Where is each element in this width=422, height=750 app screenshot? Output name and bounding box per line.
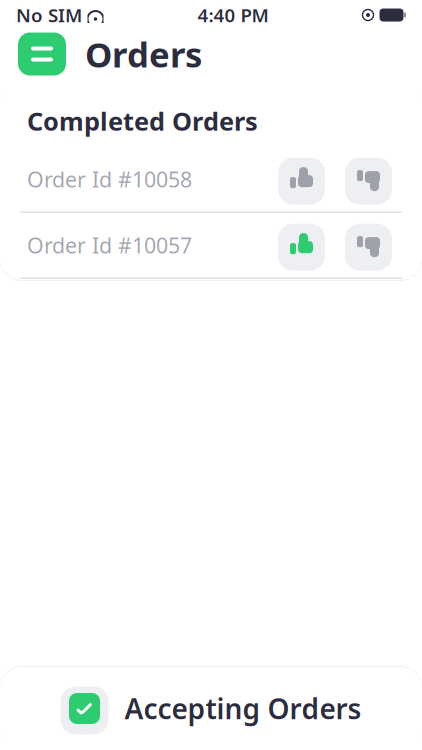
staticText: Orders xyxy=(85,31,202,77)
button[interactable]: Thumbs down for Order Id #10057 xyxy=(345,222,392,269)
button[interactable]: Accepting Orders xyxy=(0,667,422,750)
staticText: Accepting Orders xyxy=(124,690,361,727)
staticText: No SIM xyxy=(16,3,82,27)
staticText: Order Id #10057 xyxy=(27,231,192,259)
staticText: Completed Orders xyxy=(27,104,258,138)
button[interactable]: Thumbs down for Order Id #10058 xyxy=(345,156,392,203)
staticText: Order Id #10058 xyxy=(27,165,192,193)
button[interactable]: Thumbs up for Order Id #10057 xyxy=(278,222,325,269)
staticText: 4:40 PM xyxy=(197,3,268,27)
button[interactable]: Thumbs up for Order Id #10058 xyxy=(278,156,325,203)
button[interactable]: Menu xyxy=(18,32,66,75)
